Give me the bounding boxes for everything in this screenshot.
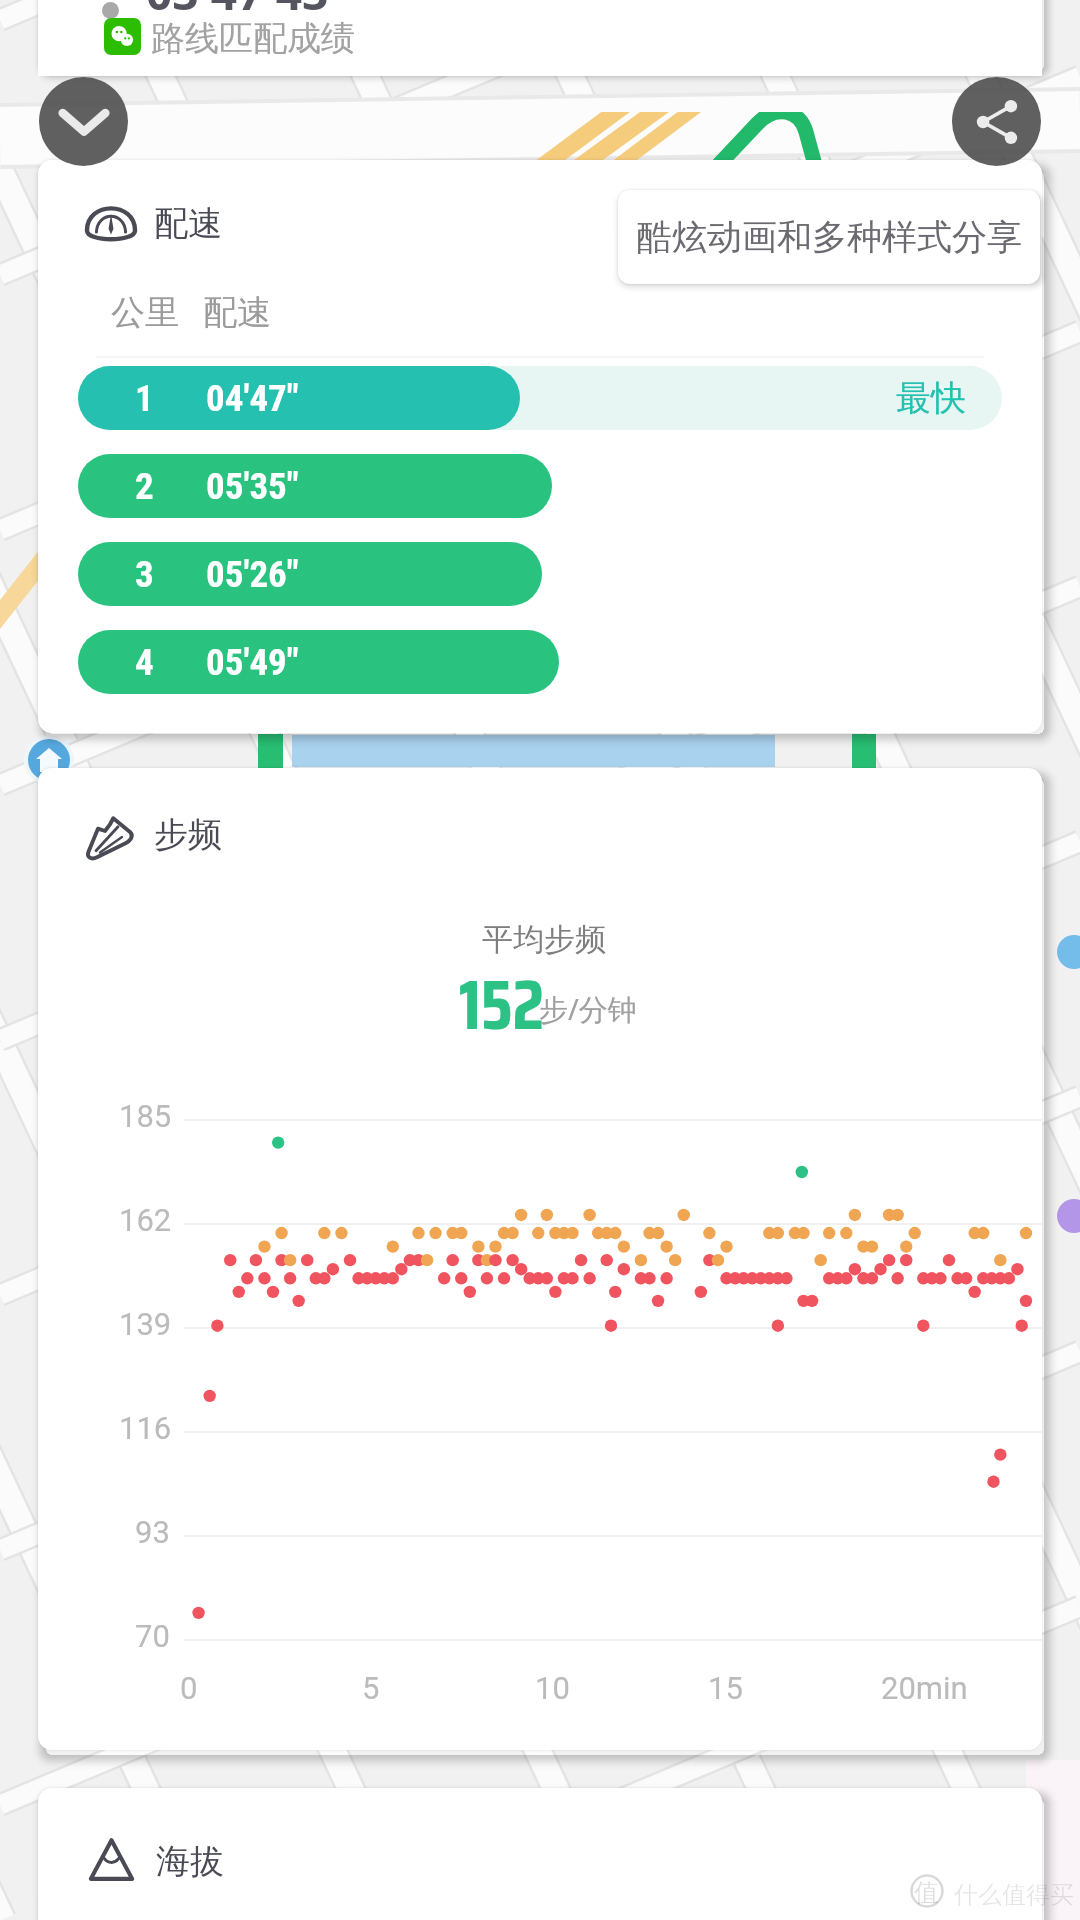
staticText: 185 — [119, 1098, 172, 1134]
staticText: 3 — [135, 553, 154, 596]
button[interactable]: 公里 — [104, 284, 186, 340]
button[interactable]: Collapse — [39, 77, 128, 166]
staticText: 20min — [881, 1670, 968, 1706]
staticText: 15 — [708, 1670, 743, 1706]
staticText: 05'49" — [206, 641, 299, 684]
staticText: 海拔 — [156, 1840, 224, 1883]
staticText: 路线匹配成绩 — [151, 17, 355, 60]
staticText: 配速 — [203, 291, 271, 334]
button[interactable]: Share — [952, 77, 1041, 166]
staticText: 0 — [180, 1670, 198, 1706]
staticText: 162 — [119, 1202, 172, 1238]
staticText: 值 — [914, 1877, 939, 1908]
staticText: 05'26" — [206, 553, 299, 596]
staticText: 2 — [135, 465, 154, 508]
staticText: 139 — [119, 1306, 172, 1342]
staticText: 最快 — [896, 376, 966, 420]
button[interactable]: 3 — [78, 542, 542, 606]
button[interactable]: 1 — [78, 366, 520, 430]
staticText: 步频 — [154, 813, 222, 856]
staticText: 152 — [459, 950, 544, 1060]
staticText: 03'47'43" — [146, 0, 351, 24]
button[interactable]: 配速 — [196, 284, 278, 340]
staticText: 平均步频 — [482, 920, 606, 959]
staticText: 配速 — [154, 202, 222, 245]
button[interactable]: 海拔 — [38, 1788, 1042, 1920]
button[interactable]: 酷炫动画和多种样式分享 — [618, 190, 1040, 284]
staticText: 什么值得买 — [954, 1880, 1074, 1910]
staticText: 70 — [135, 1618, 170, 1654]
staticText: 10 — [535, 1670, 570, 1706]
staticText: 公里 — [111, 291, 179, 334]
staticText: 1 — [135, 377, 154, 420]
staticText: 04'47" — [206, 377, 299, 420]
staticText: 4 — [135, 641, 154, 684]
staticText: 5 — [362, 1670, 380, 1706]
staticText: 116 — [119, 1410, 172, 1446]
staticText: 步/分钟 — [539, 989, 637, 1029]
staticText: 05'35" — [206, 465, 299, 508]
button[interactable]: 4 — [78, 630, 559, 694]
staticText: 酷炫动画和多种样式分享 — [637, 215, 1022, 259]
button[interactable]: 2 — [78, 454, 552, 518]
button[interactable]: 路线匹配成绩 — [104, 13, 355, 59]
staticText: 93 — [135, 1514, 170, 1550]
